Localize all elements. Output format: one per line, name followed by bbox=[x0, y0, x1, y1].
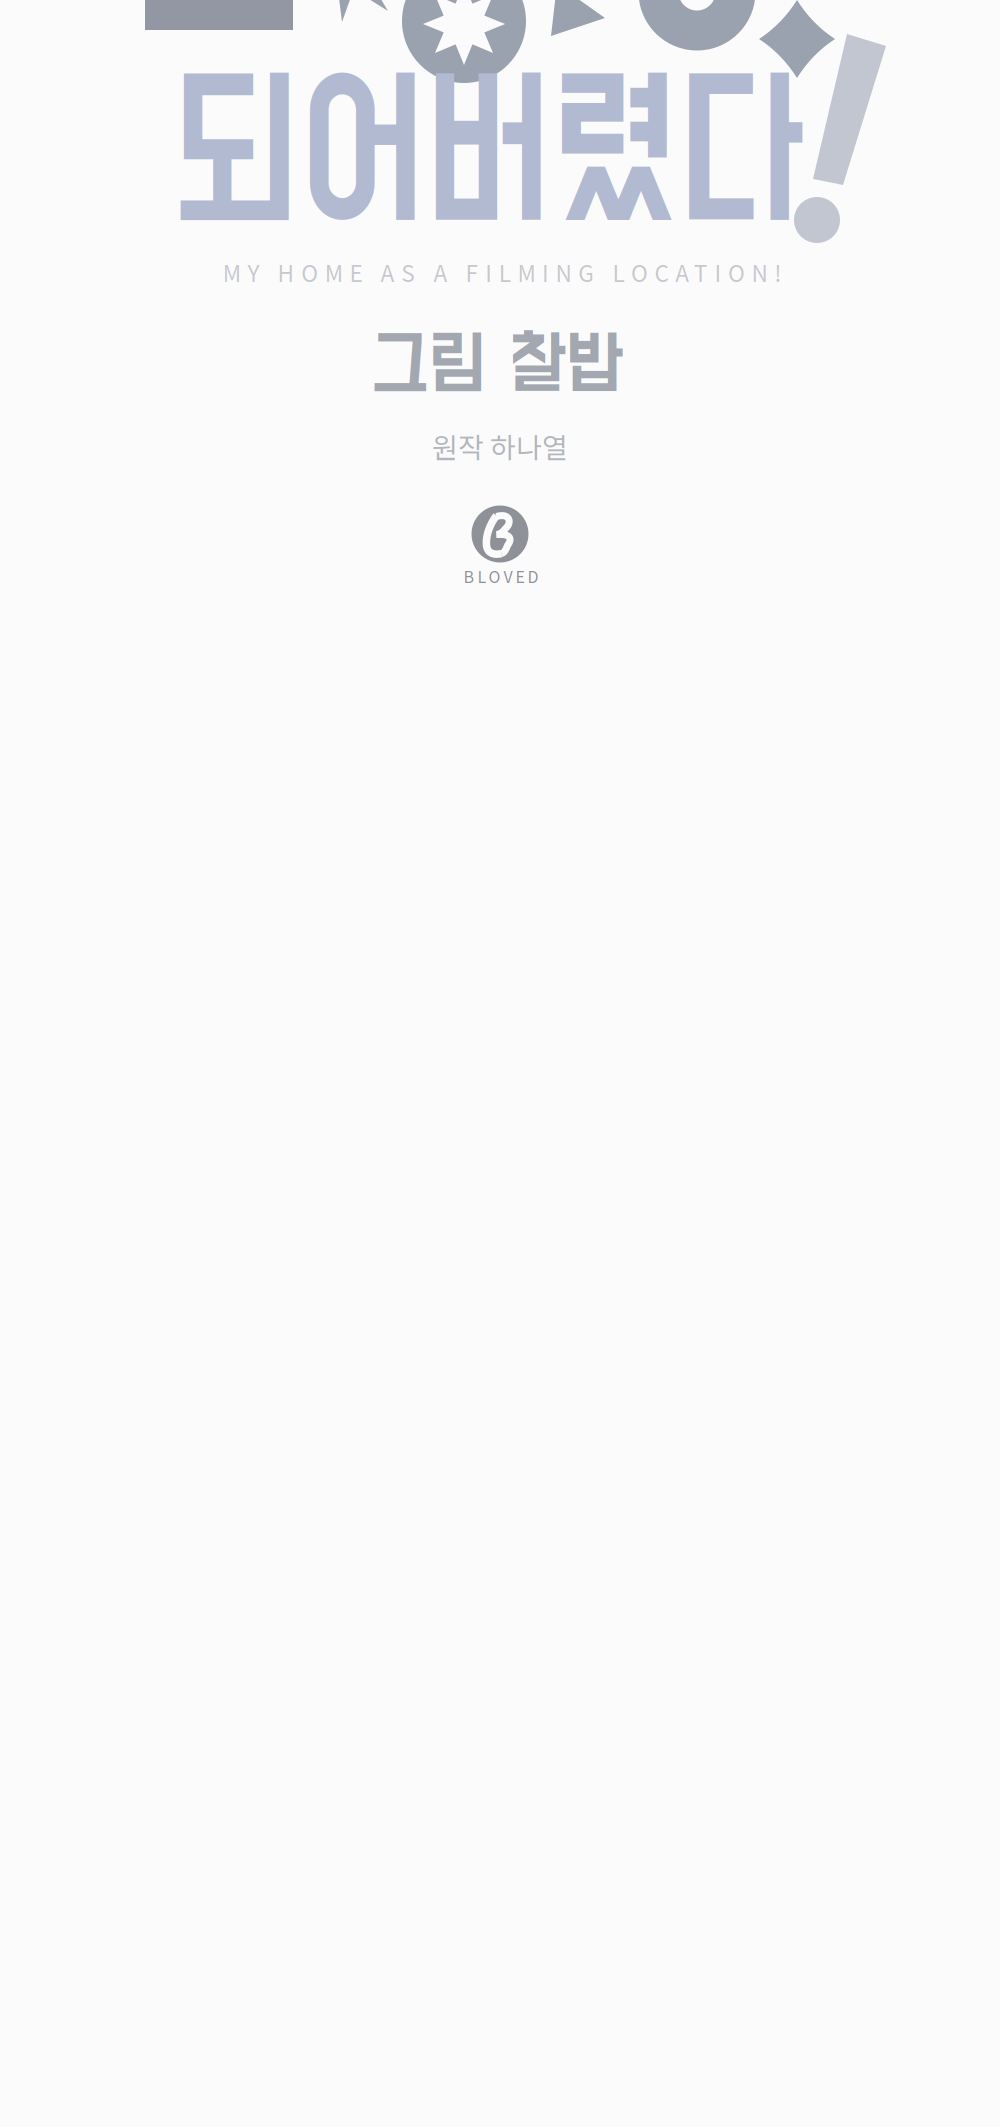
staticText: 그림 찰밥 bbox=[367, 327, 626, 405]
staticText: 원작 하나열 bbox=[432, 426, 568, 466]
staticText: MY HOME AS A FILMING LOCATION! bbox=[223, 256, 781, 288]
staticText: BLOVED bbox=[463, 564, 538, 588]
staticText: 되어버렸다 bbox=[114, 60, 864, 254]
